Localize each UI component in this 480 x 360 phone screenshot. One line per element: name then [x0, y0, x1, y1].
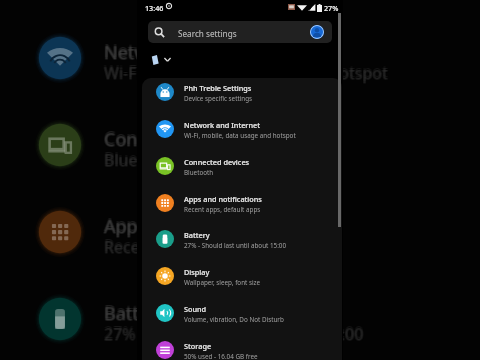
staticText: Wi-Fi, mobile, data usage and hotspot: [105, 63, 389, 85]
staticText: Display: [184, 267, 210, 277]
staticText: Wallpaper, sleep, font size: [184, 278, 261, 287]
staticText: Storage: [184, 341, 212, 351]
staticText: Connected devices: [103, 125, 261, 150]
staticText: Apps and notifications: [104, 212, 293, 237]
staticText: Bluetooth: [104, 150, 179, 172]
button[interactable]: Battery: [137, 221, 343, 258]
staticText: Battery: [103, 301, 165, 326]
staticText: 27% - Should last until about 15:00: [184, 241, 287, 250]
staticText: Phh Treble Settings: [184, 83, 252, 93]
staticText: Recent apps, default apps: [103, 234, 297, 256]
staticText: Apps and notifications: [105, 212, 294, 237]
staticText: Battery: [104, 299, 166, 324]
staticText: 27% - Should last until about 15:00: [104, 321, 364, 343]
staticText: 27% - Should last until about 15:00: [104, 323, 364, 345]
staticText: Connected devices: [184, 157, 250, 167]
staticText: 27% - Should last until about 15:00: [105, 324, 365, 346]
staticText: Wi-Fi, mobile, data usage and hotspot: [184, 131, 296, 140]
staticText: Recent apps, default apps: [103, 236, 297, 258]
staticText: Network and Internet: [104, 38, 288, 63]
staticText: Connected devices: [105, 127, 263, 152]
staticText: 27% - Should last until about 15:00: [103, 324, 363, 346]
staticText: Network and Internet: [104, 40, 288, 65]
staticText: Recent apps, default apps: [105, 234, 299, 256]
staticText: Apps and notifications: [184, 194, 262, 204]
staticText: Network and Internet: [104, 41, 288, 66]
staticText: Connected devices: [103, 127, 261, 152]
staticText: Recent apps, default apps: [104, 237, 298, 259]
staticText: Bluetooth: [184, 168, 214, 177]
staticText: Battery: [104, 301, 166, 326]
button[interactable]: SIM selector: [149, 52, 185, 68]
staticText: Wi-Fi, mobile, data usage and hotspot: [105, 62, 389, 84]
button[interactable]: Search: [148, 21, 332, 43]
staticText: Bluetooth: [104, 147, 179, 169]
staticText: Device specific settings: [184, 94, 253, 103]
staticText: 27%: [324, 3, 339, 13]
staticText: Battery: [184, 230, 210, 240]
staticText: 27% - Should last until about 15:00: [105, 321, 365, 343]
staticText: 50% used - 16.04 GB free: [184, 352, 258, 360]
staticText: Recent apps, default apps: [105, 236, 299, 258]
staticText: 13:46: [145, 3, 164, 13]
staticText: Recent apps, default apps: [184, 205, 261, 214]
staticText: Recent apps, default apps: [104, 236, 298, 258]
staticText: Volume, vibration, Do Not Disturb: [184, 315, 284, 324]
button[interactable]: Network and Internet: [137, 111, 343, 148]
staticText: Bluetooth: [105, 147, 180, 169]
staticText: Bluetooth: [104, 149, 179, 171]
staticText: Connected devices: [103, 128, 261, 153]
staticText: Recent apps, default apps: [103, 237, 297, 259]
staticText: 27% - Should last until about 15:00: [104, 324, 364, 346]
staticText: Apps and notifications: [104, 214, 293, 239]
staticText: Bluetooth: [103, 150, 178, 172]
staticText: Connected devices: [104, 128, 262, 153]
staticText: Apps and notifications: [103, 212, 292, 237]
staticText: Battery: [105, 299, 167, 324]
other: Search: [154, 27, 165, 38]
staticText: Battery: [103, 299, 165, 324]
staticText: Battery: [103, 302, 165, 327]
staticText: Search settings: [178, 28, 237, 39]
staticText: Network and Internet: [103, 40, 287, 65]
button[interactable]: Storage: [137, 332, 343, 360]
staticText: Network and Internet: [103, 41, 287, 66]
staticText: Wi-Fi, mobile, data usage and hotspot: [104, 62, 388, 84]
staticText: Wi-Fi, mobile, data usage and hotspot: [103, 62, 387, 84]
button[interactable]: Account: [310, 25, 324, 39]
staticText: Apps and notifications: [103, 215, 292, 240]
staticText: 27% - Should last until about 15:00: [105, 323, 365, 345]
staticText: Bluetooth: [103, 147, 178, 169]
button[interactable]: Apps and notifications: [137, 185, 343, 222]
staticText: Wi-Fi, mobile, data usage and hotspot: [104, 60, 388, 82]
button[interactable]: Sound: [137, 295, 343, 332]
staticText: Apps and notifications: [105, 214, 294, 239]
staticText: Connected devices: [105, 128, 263, 153]
staticText: Battery: [105, 301, 167, 326]
staticText: 27% - Should last until about 15:00: [103, 321, 363, 343]
staticText: Apps and notifications: [103, 214, 292, 239]
staticText: Connected devices: [104, 125, 262, 150]
staticText: 27% - Should last until about 15:00: [103, 323, 363, 345]
staticText: Battery: [105, 302, 167, 327]
staticText: Network and Internet: [103, 38, 287, 63]
staticText: Wi-Fi, mobile, data usage and hotspot: [103, 63, 387, 85]
staticText: Recent apps, default apps: [104, 234, 298, 256]
staticText: Connected devices: [105, 125, 263, 150]
staticText: Wi-Fi, mobile, data usage and hotspot: [104, 63, 388, 85]
staticText: Wi-Fi, mobile, data usage and hotspot: [103, 60, 387, 82]
staticText: Sound: [184, 304, 207, 314]
staticText: Network and Internet: [105, 38, 289, 63]
staticText: Apps and notifications: [105, 215, 294, 240]
button[interactable]: Display: [137, 258, 343, 295]
staticText: Bluetooth: [105, 150, 180, 172]
staticText: Network and Internet: [184, 120, 261, 130]
button[interactable]: Phh Treble Settings: [137, 74, 343, 111]
staticText: Recent apps, default apps: [105, 237, 299, 259]
button[interactable]: Connected devices: [137, 148, 343, 185]
staticText: Apps and notifications: [104, 215, 293, 240]
staticText: Battery: [104, 302, 166, 327]
staticText: Bluetooth: [103, 149, 178, 171]
staticText: Connected devices: [104, 127, 262, 152]
staticText: Wi-Fi, mobile, data usage and hotspot: [105, 60, 389, 82]
